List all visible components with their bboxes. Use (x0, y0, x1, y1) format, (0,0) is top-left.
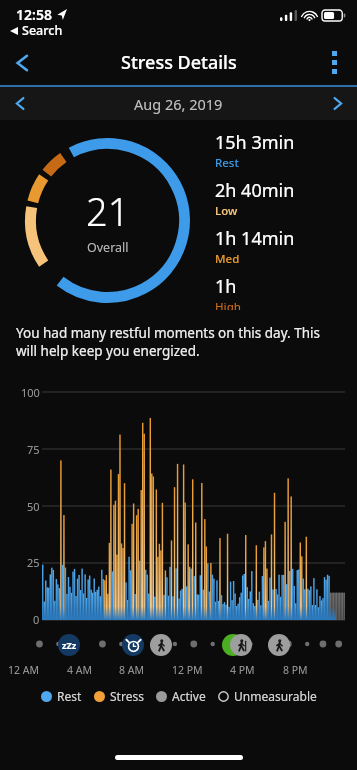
staticText: 12 AM (8, 663, 39, 677)
button[interactable]: More options (311, 40, 357, 85)
staticText: Unmeasurable (234, 688, 317, 704)
staticText: 1h 14min (215, 226, 295, 251)
staticText: 2h 40min (215, 178, 295, 203)
staticText: 75 (27, 442, 40, 457)
button[interactable]: Activity (268, 634, 290, 656)
staticText: Active (172, 688, 206, 704)
staticText: 25 (27, 555, 40, 570)
staticText: zZz (62, 639, 77, 651)
button[interactable]: Back (0, 40, 46, 85)
staticText: 1h (215, 274, 237, 299)
button[interactable]: Next day (317, 87, 357, 120)
staticText: 8 PM (283, 663, 308, 677)
staticText: 0 (33, 612, 40, 627)
staticText: 50 (27, 499, 40, 514)
staticText: Aug 26, 2019 (134, 94, 223, 114)
staticText: 4 PM (230, 663, 255, 677)
button[interactable]: Activity (230, 634, 252, 656)
staticText: Search (22, 22, 63, 39)
staticText: 12 PM (172, 663, 203, 677)
staticText: Rest (215, 155, 239, 171)
staticText: Rest (57, 688, 82, 704)
staticText: 21 (86, 185, 130, 237)
button[interactable]: Activity (122, 634, 144, 656)
staticText: 4 AM (67, 663, 92, 677)
button[interactable]: Previous day (0, 87, 40, 120)
button[interactable]: Stress (94, 688, 144, 704)
button[interactable]: Rest (41, 688, 82, 704)
staticText: High (215, 299, 242, 310)
staticText: 15h 3min (215, 130, 295, 155)
staticText: Low (215, 203, 238, 219)
button[interactable]: Activity (150, 634, 172, 656)
staticText: 12:58 (16, 5, 52, 24)
staticText: 8 AM (119, 663, 144, 677)
button[interactable]: Activity (58, 634, 80, 656)
button[interactable]: Active (156, 688, 206, 704)
staticText: Stress (110, 688, 144, 704)
staticText: Med (215, 251, 240, 267)
staticText: 100 (21, 385, 40, 400)
button[interactable]: Unmeasurable (218, 688, 317, 704)
staticText: Stress Details (121, 50, 237, 75)
staticText: You had many restful moments on this day… (16, 324, 341, 360)
staticText: Overall (87, 239, 129, 256)
